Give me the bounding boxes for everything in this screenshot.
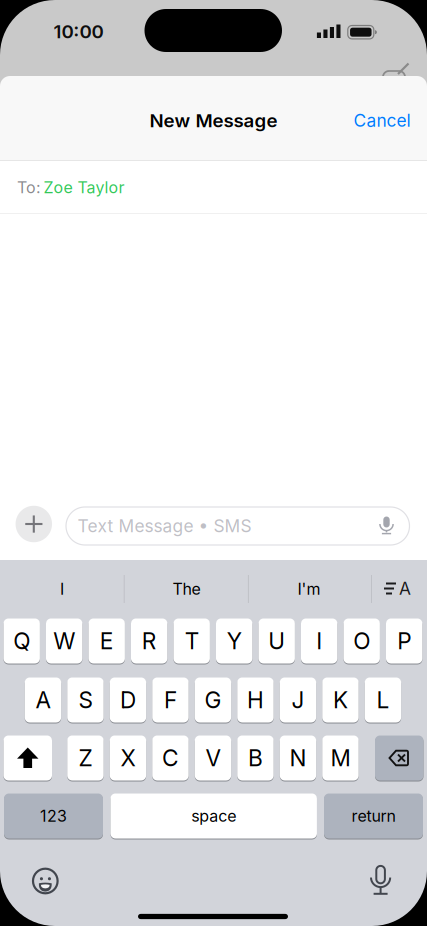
staticText: F (164, 687, 177, 713)
staticText: space (191, 807, 236, 825)
button[interactable]: Z (67, 735, 104, 781)
button[interactable]: Dictation (365, 863, 397, 897)
button[interactable]: Delete (375, 735, 423, 781)
button[interactable]: K (322, 677, 359, 723)
staticText: U (268, 628, 285, 654)
button[interactable]: Cancel (347, 105, 417, 135)
button[interactable]: Dictate (375, 515, 397, 536)
button[interactable]: H (237, 677, 274, 723)
staticText: To: (17, 178, 41, 197)
staticText: E (100, 628, 114, 654)
staticText: Text Message • SMS (77, 516, 251, 536)
staticText: R (142, 628, 157, 654)
button[interactable]: 123 (4, 793, 103, 839)
staticText: J (291, 687, 304, 713)
button[interactable]: X (110, 735, 146, 781)
staticText: L (376, 687, 389, 713)
staticText: O (353, 628, 370, 654)
button[interactable]: M (322, 735, 359, 781)
button[interactable]: N (280, 735, 316, 781)
staticText: K (333, 687, 348, 713)
staticText: A (35, 687, 50, 713)
staticText: return (351, 807, 395, 825)
staticText: B (248, 745, 263, 771)
staticText: 10:00 (53, 20, 103, 42)
staticText: I (316, 628, 322, 654)
button[interactable]: T (173, 618, 210, 664)
staticText: X (120, 745, 135, 771)
staticText: I (60, 580, 64, 598)
button[interactable]: C (152, 735, 189, 781)
button[interactable]: E (88, 618, 125, 664)
button[interactable]: S (67, 677, 104, 723)
staticText: New Message (149, 109, 277, 131)
button[interactable]: G (195, 677, 231, 723)
button[interactable]: I'm (254, 566, 364, 612)
button[interactable]: Shift (3, 735, 52, 781)
staticText: S (78, 687, 92, 713)
button[interactable] (0, 161, 427, 213)
staticText: N (289, 745, 306, 771)
button[interactable]: I (7, 566, 117, 612)
button[interactable]: O (343, 618, 380, 664)
staticText: A (399, 578, 411, 599)
staticText: P (397, 628, 411, 654)
staticText: W (53, 628, 75, 654)
button[interactable]: Emoji (30, 866, 60, 896)
staticText: D (120, 687, 136, 713)
button[interactable]: U (258, 618, 295, 664)
button[interactable]: W (46, 618, 82, 664)
staticText: Y (227, 628, 242, 654)
staticText: G (204, 687, 221, 713)
staticText: Q (13, 628, 30, 654)
button[interactable]: Predictive text (383, 578, 415, 599)
staticText: The (172, 580, 200, 598)
button[interactable]: Text Message (66, 507, 409, 545)
button[interactable]: space (110, 793, 317, 839)
button[interactable]: A (25, 677, 61, 723)
button[interactable]: The (131, 566, 241, 612)
button[interactable]: P (386, 618, 422, 664)
button[interactable]: R (131, 618, 167, 664)
button[interactable]: Add attachment (15, 506, 52, 542)
button[interactable]: L (365, 677, 401, 723)
staticText: Cancel (353, 110, 410, 131)
button[interactable]: return (324, 793, 423, 839)
button[interactable]: V (195, 735, 231, 781)
staticText: Z (78, 745, 92, 771)
button[interactable]: B (237, 735, 274, 781)
button[interactable]: J (280, 677, 316, 723)
button[interactable]: D (110, 677, 146, 723)
staticText: V (205, 745, 220, 771)
staticText: 123 (40, 807, 67, 825)
staticText: Zoe Taylor (43, 178, 124, 197)
staticText: C (162, 745, 179, 771)
staticText: H (247, 687, 264, 713)
staticText: I'm (297, 580, 320, 598)
button[interactable]: Q (3, 618, 40, 664)
button[interactable]: I (301, 618, 337, 664)
button[interactable]: Y (216, 618, 252, 664)
staticText: T (185, 628, 199, 654)
staticText: M (330, 745, 350, 771)
button[interactable]: F (152, 677, 189, 723)
